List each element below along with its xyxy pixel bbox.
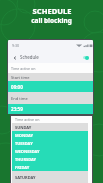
button[interactable]: FRIDAY [12, 163, 88, 171]
staticText: 09:00 [11, 84, 23, 90]
staticText: FRIDAY [15, 165, 30, 170]
staticText: call blocking [31, 16, 72, 25]
staticText: End time [11, 96, 28, 101]
staticText: SUNDAY [15, 125, 32, 130]
staticText: MONDAY [15, 133, 34, 138]
staticText: Start time [11, 75, 30, 80]
button[interactable]: THURSDAY [12, 155, 88, 163]
button[interactable]: SATURDAY [12, 171, 88, 183]
staticText: SATURDAY [15, 175, 36, 180]
button[interactable]: Start time [8, 73, 93, 81]
button[interactable]: SUNDAY [12, 123, 88, 131]
staticText: TUESDAY [15, 141, 33, 146]
button[interactable]: Back [11, 54, 18, 61]
button[interactable]: MONDAY [12, 131, 88, 139]
staticText: 23:59 [11, 106, 23, 112]
staticText: THURSDAY [15, 157, 37, 162]
staticText: Time active on [11, 66, 36, 71]
button[interactable]: 23:59 [8, 104, 93, 114]
staticText: SCHEDULE [32, 6, 72, 16]
button[interactable]: Time active on [8, 63, 93, 73]
button[interactable]: WEDNESDAY [12, 147, 88, 155]
button[interactable]: End time [8, 92, 93, 104]
staticText: Schedule [20, 54, 39, 60]
staticText: 9:30 [12, 43, 20, 48]
button[interactable]: Enable schedule [82, 55, 89, 60]
button[interactable]: TUESDAY [12, 139, 88, 147]
staticText: Time active on [15, 117, 40, 122]
button[interactable]: 09:00 [8, 81, 93, 92]
staticText: WEDNESDAY [15, 149, 40, 154]
button[interactable]: Time active on [12, 116, 88, 123]
